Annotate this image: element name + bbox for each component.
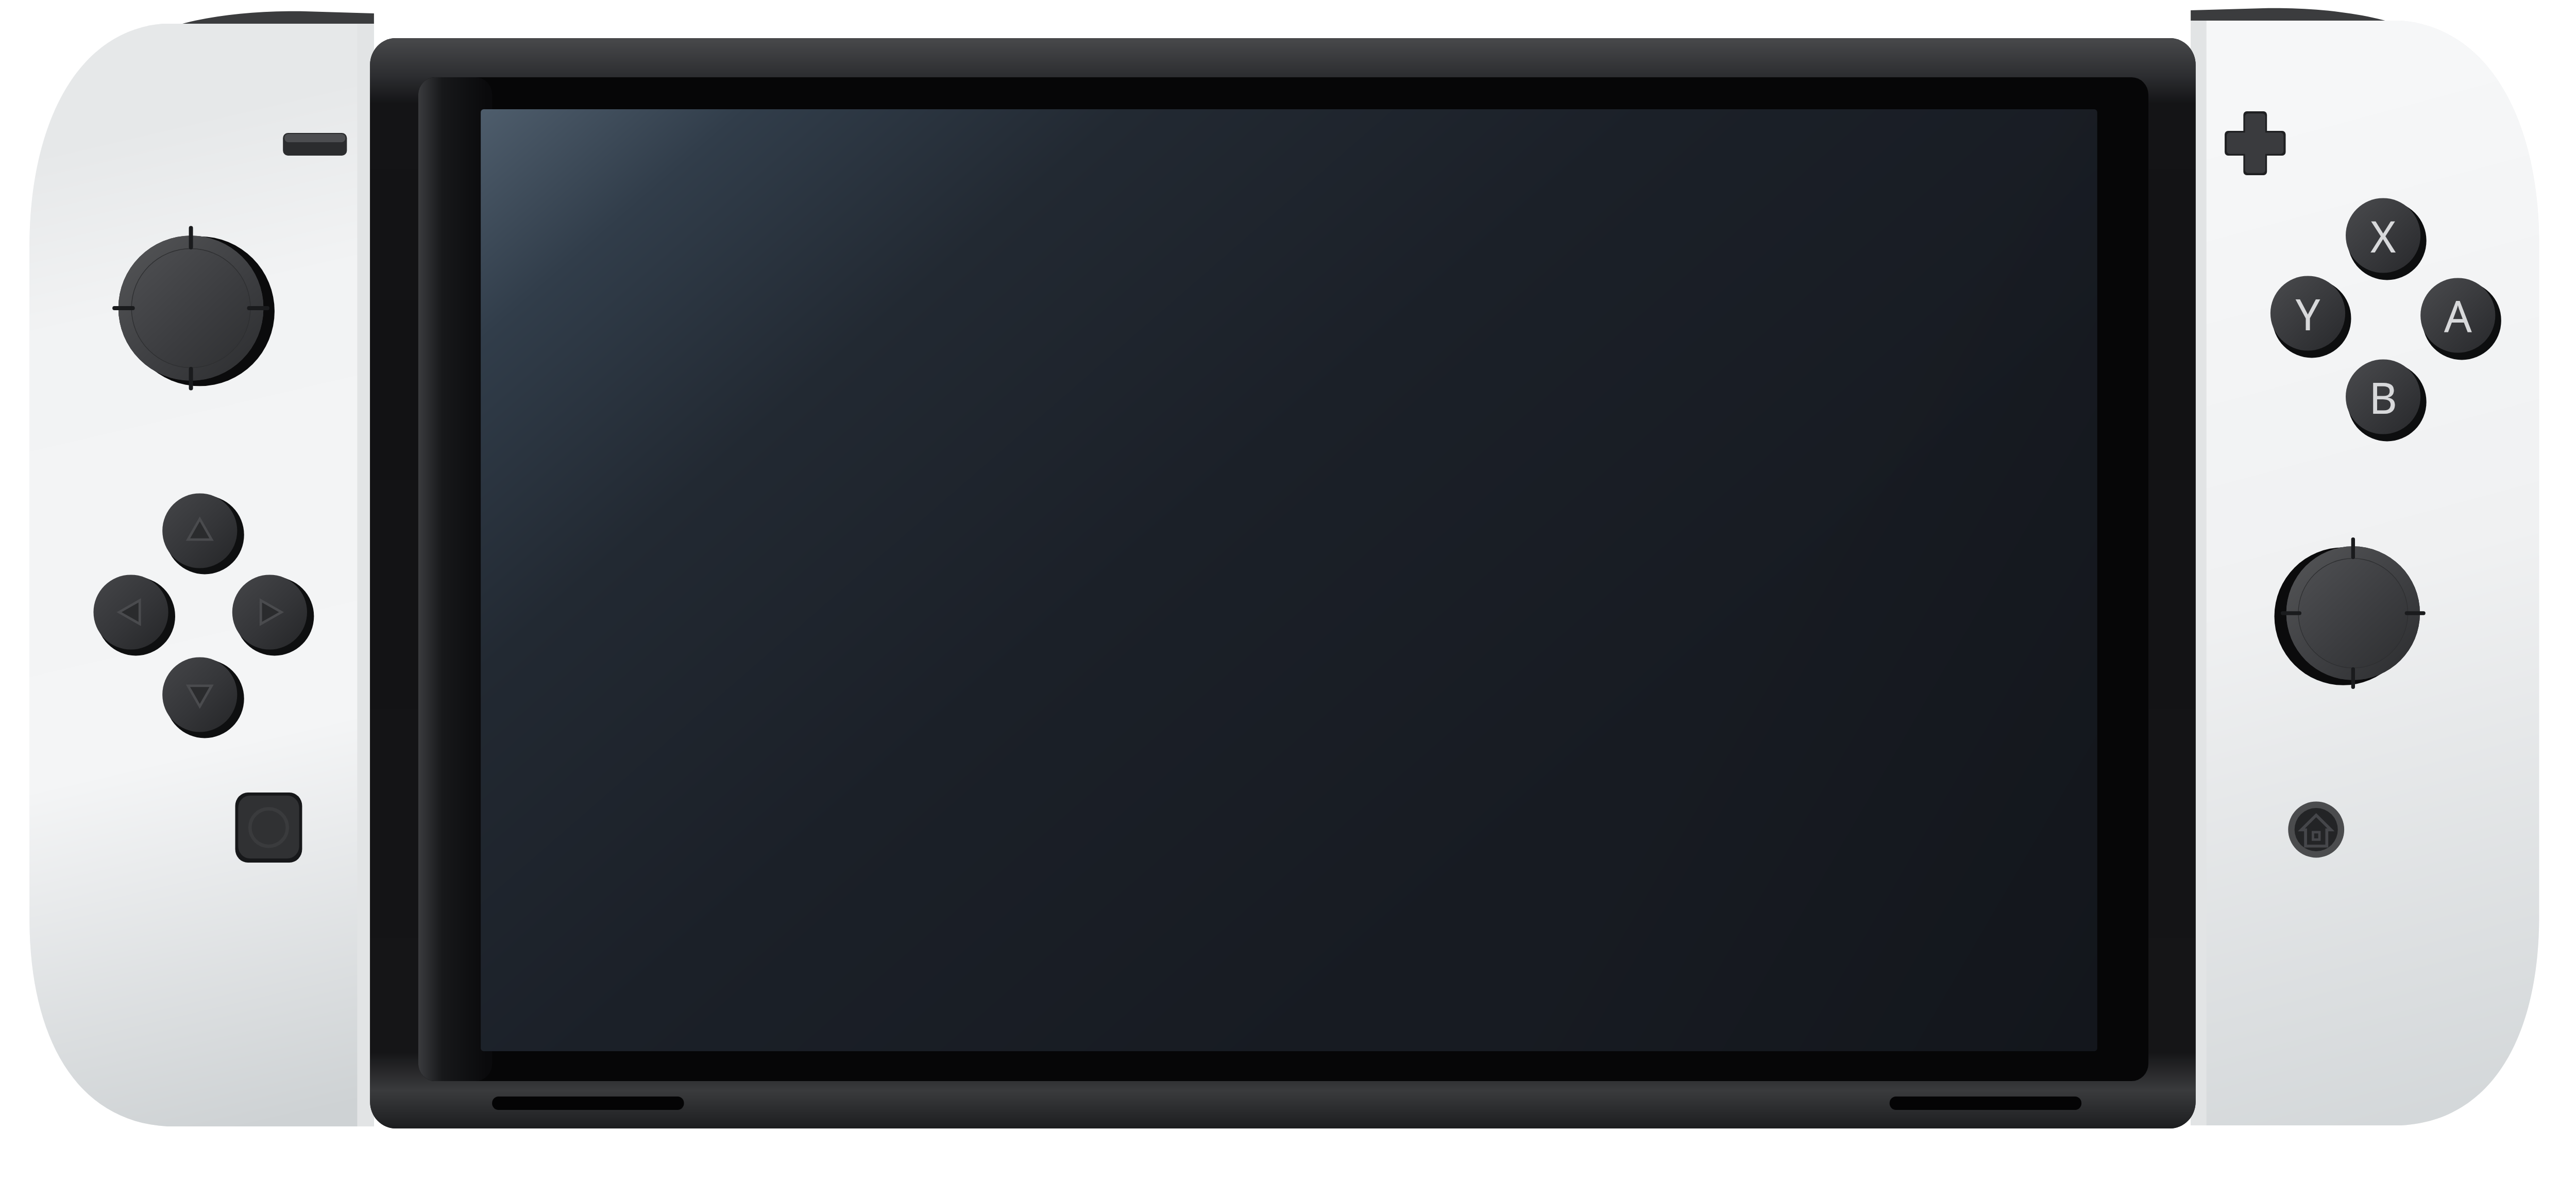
button[interactable]: Nintendo Switch OLED console: [0, 0, 2576, 1180]
